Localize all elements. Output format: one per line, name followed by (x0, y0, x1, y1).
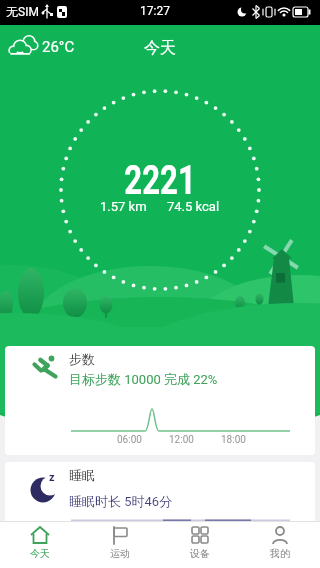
staticText: 睡眠时长 5时46分 (69, 493, 173, 509)
button[interactable]: 运动 (80, 522, 160, 568)
button[interactable]: 设备 (160, 522, 240, 568)
button[interactable]: 今天 (0, 522, 80, 568)
button[interactable]: 步数 (5, 346, 315, 455)
staticText: 步数 (69, 351, 95, 367)
staticText: 目标步数 10000 完成 22% (69, 371, 218, 387)
staticText: z (49, 471, 55, 484)
button[interactable]: z (5, 462, 315, 521)
staticText: 我的 (270, 547, 290, 560)
staticText: 12:00 (169, 434, 194, 446)
button[interactable]: 我的 (240, 522, 320, 568)
staticText: 26°C (42, 38, 75, 56)
staticText: 18:00 (221, 434, 246, 446)
staticText: 17:27 (140, 4, 170, 18)
staticText: 睡眠 (69, 467, 95, 483)
staticText: 74.5 kcal (167, 199, 220, 214)
staticText: 1.57 km (100, 199, 147, 214)
staticText: 设备 (190, 547, 210, 560)
staticText: 今天 (144, 38, 176, 58)
staticText: 2221 (124, 156, 196, 204)
staticText: 运动 (110, 547, 130, 560)
staticText: 今天 (30, 547, 50, 560)
staticText: 06:00 (117, 434, 142, 446)
staticText: 无SIM (6, 4, 39, 19)
